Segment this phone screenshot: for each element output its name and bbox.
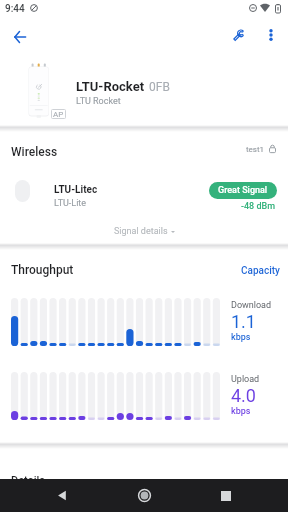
button[interactable]: Capacity bbox=[237, 260, 284, 282]
staticText: 0FB bbox=[149, 80, 170, 94]
staticText: AP bbox=[53, 110, 64, 119]
staticText: LTU-Rocket bbox=[76, 79, 145, 94]
button[interactable]: Home bbox=[124, 479, 164, 512]
staticText: Capacity bbox=[241, 265, 280, 277]
staticText: Great Signal bbox=[218, 185, 268, 196]
button[interactable]: Signal details bbox=[108, 222, 181, 240]
button[interactable]: More options bbox=[259, 23, 283, 47]
staticText: LTU-Litec bbox=[54, 184, 98, 196]
staticText: 9:44 bbox=[5, 3, 25, 15]
button[interactable]: LTU-Litec bbox=[0, 177, 288, 217]
staticText: test1 bbox=[246, 145, 265, 154]
staticText: Download bbox=[231, 300, 272, 311]
button[interactable]: Details bbox=[0, 449, 288, 479]
button[interactable]: AP bbox=[0, 56, 288, 125]
staticText: LTU Rocket bbox=[76, 96, 121, 107]
staticText: Upload bbox=[231, 374, 260, 385]
staticText: LTU-Lite bbox=[54, 198, 87, 209]
staticText: Throughput bbox=[11, 263, 74, 277]
staticText: Wireless bbox=[11, 145, 58, 159]
button[interactable]: Back bbox=[42, 479, 82, 512]
button[interactable]: Back bbox=[6, 23, 34, 51]
staticText: kbps bbox=[231, 332, 251, 343]
staticText: 1.1 bbox=[231, 311, 256, 332]
staticText: kbps bbox=[231, 406, 251, 417]
button[interactable]: Tools bbox=[226, 23, 250, 47]
button[interactable]: Recents bbox=[206, 479, 246, 512]
staticText: -48 dBm bbox=[241, 201, 276, 212]
staticText: 4.0 bbox=[231, 385, 256, 406]
staticText: Details bbox=[11, 474, 46, 487]
staticText: Signal details bbox=[114, 226, 168, 236]
